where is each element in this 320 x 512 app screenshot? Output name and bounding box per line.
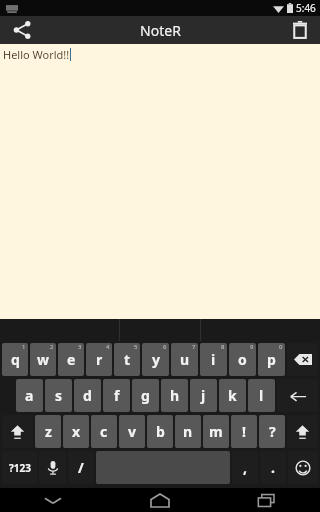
button[interactable]: k [219,379,246,412]
staticText: 6 [163,343,167,351]
staticText: 4 [106,343,110,351]
staticText: o [238,350,247,369]
staticText: q [11,350,20,369]
staticText: g [141,386,150,405]
button[interactable]: a [16,379,43,412]
staticText: NoteR [140,21,181,40]
staticText: u [180,350,190,369]
staticText: 0 [279,343,283,351]
button[interactable]: Shift [287,415,318,448]
button[interactable]: s [45,379,72,412]
staticText: f [114,386,120,405]
button[interactable]: Emoji [288,451,318,484]
button[interactable]: Voice input [39,451,66,484]
button[interactable]: ! [231,415,257,448]
button[interactable]: v [119,415,145,448]
button[interactable]: b [147,415,173,448]
staticText: c [100,422,108,441]
staticText: 1 [22,343,26,351]
button[interactable]: r [86,343,112,376]
staticText: d [83,386,92,405]
staticText: ?123 [9,461,31,475]
staticText: . [271,458,275,477]
staticText: n [183,422,193,441]
button[interactable]: z [35,415,61,448]
staticText: Hello World!! [3,47,70,62]
staticText: m [209,422,223,441]
staticText: t [124,350,131,369]
button[interactable]: i [200,343,227,376]
staticText: k [228,386,237,405]
button[interactable]: p [258,343,285,376]
button[interactable]: c [91,415,117,448]
staticText: s [55,386,63,405]
button[interactable]: ? [259,415,285,448]
staticText: a [25,386,34,405]
staticText: j [201,386,206,405]
button[interactable]: . [260,451,286,484]
button[interactable]: Recent apps [213,488,320,512]
button[interactable]: u [171,343,198,376]
button[interactable]: n [175,415,201,448]
button[interactable]: y [142,343,169,376]
staticText: 7 [192,343,196,351]
staticText: 3 [78,343,82,351]
button[interactable]: Home [106,488,213,512]
staticText: b [156,422,165,441]
button[interactable]: Delete [280,16,320,44]
staticText: ? [269,422,276,441]
button[interactable]: Hide keyboard [0,488,106,512]
staticText: 9 [250,343,254,351]
button[interactable]: Enter [277,379,318,412]
button[interactable]: , [232,451,258,484]
button[interactable]: Backspace [287,343,318,376]
button[interactable]: / [68,451,94,484]
button[interactable]: w [30,343,56,376]
staticText: w [37,350,49,369]
button[interactable]: ?123 [2,451,37,484]
staticText: 8 [221,343,225,351]
button[interactable]: j [190,379,217,412]
button[interactable]: Share [0,16,44,44]
staticText: z [45,422,52,441]
button[interactable]: e [58,343,84,376]
button[interactable]: Shift [2,415,33,448]
staticText: 5 [134,343,138,351]
button[interactable]: m [203,415,229,448]
staticText: y [152,350,160,369]
staticText: e [67,350,76,369]
button[interactable]: d [74,379,101,412]
staticText: l [259,386,264,405]
staticText: p [267,350,276,369]
staticText: v [128,422,136,441]
staticText: i [211,350,216,369]
staticText: h [170,386,180,405]
staticText: , [243,458,247,477]
staticText: 5:46 [296,1,316,15]
staticText: r [96,350,103,369]
staticText: / [78,458,84,477]
staticText: x [72,422,81,441]
button[interactable]: f [103,379,130,412]
button[interactable]: t [114,343,140,376]
button[interactable]: q [2,343,28,376]
button[interactable]: Hello World!! [0,44,320,319]
button[interactable]: g [132,379,159,412]
staticText: ! [242,422,246,441]
button[interactable]: x [63,415,89,448]
button[interactable]: o [229,343,256,376]
staticText: 2 [50,343,54,351]
button[interactable]: l [248,379,275,412]
button[interactable]: h [161,379,188,412]
